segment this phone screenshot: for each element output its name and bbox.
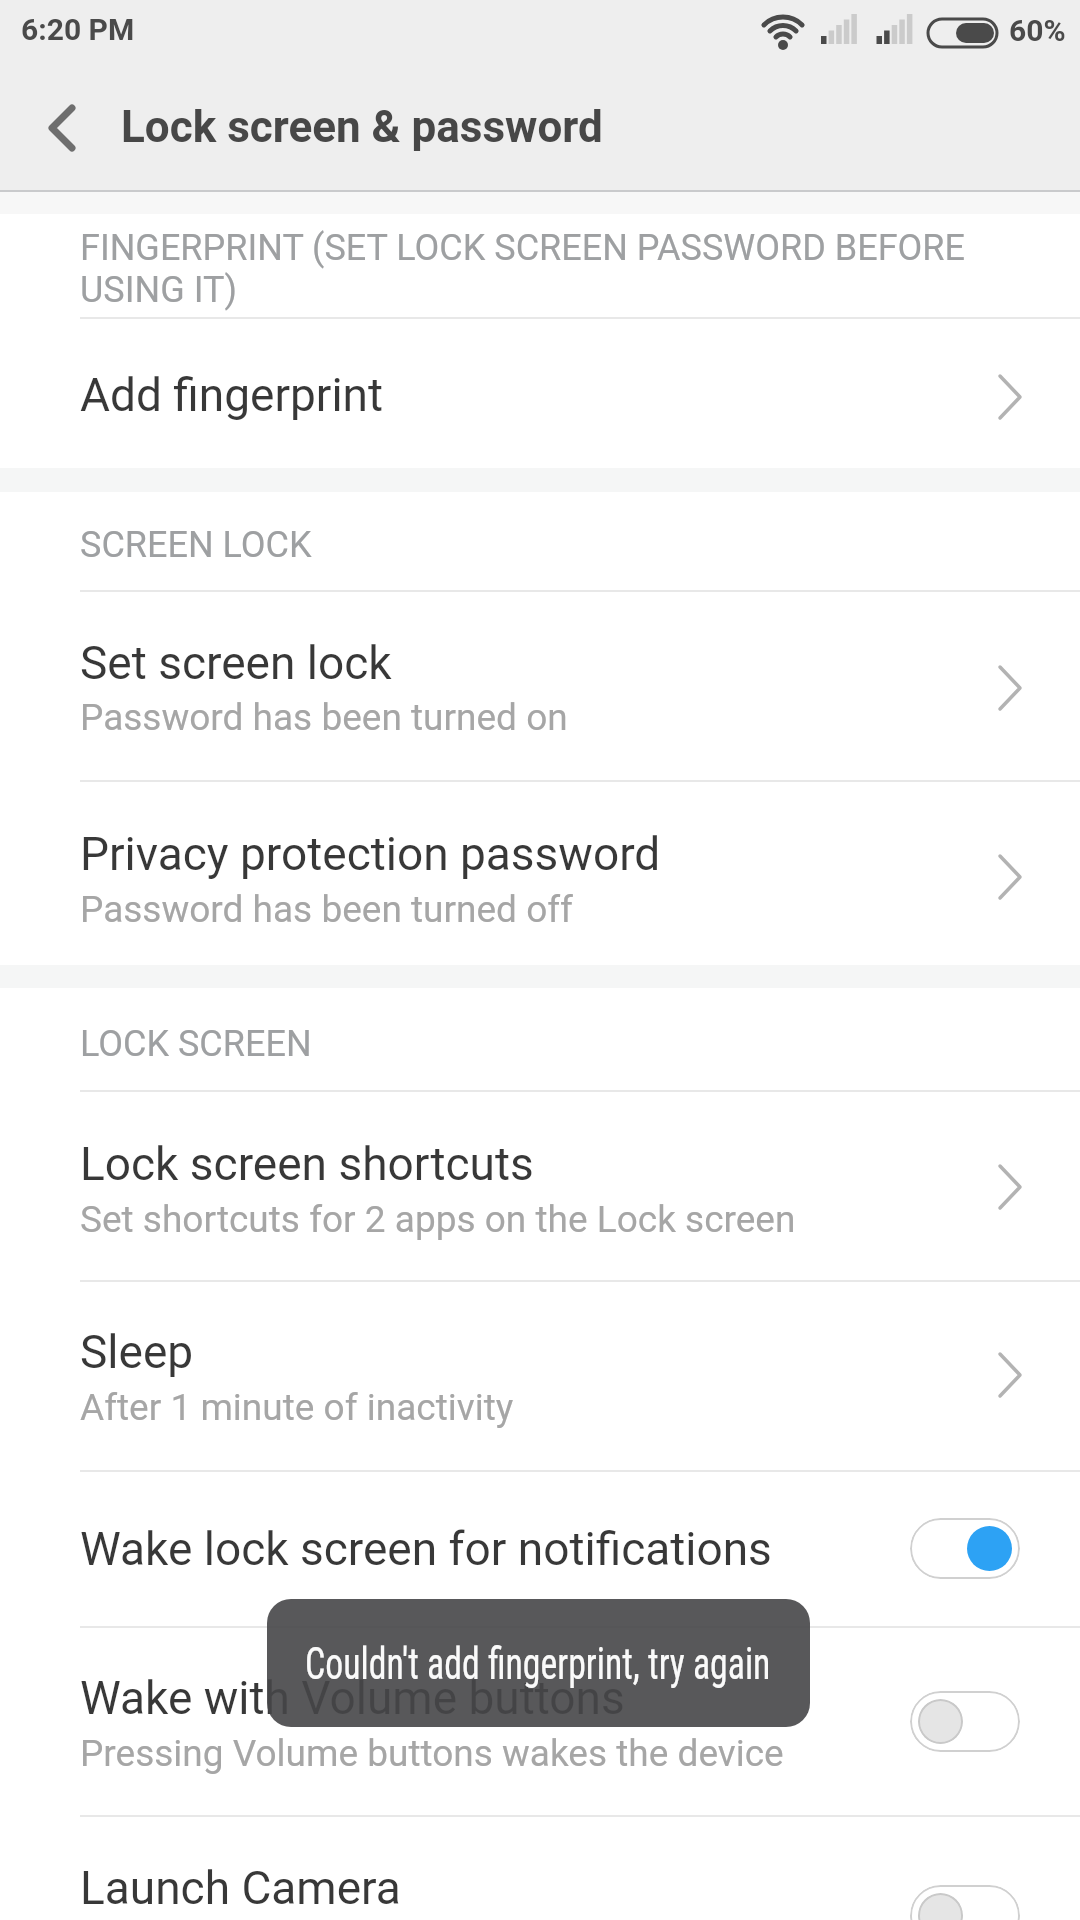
- staticText: Lock screen shortcuts: [80, 1137, 534, 1191]
- staticText: Set shortcuts for 2 apps on the Lock scr…: [80, 1198, 796, 1241]
- staticText: Password has been turned on: [80, 696, 568, 739]
- staticText: Launch Camera: [80, 1861, 401, 1915]
- staticText: Add fingerprint: [80, 368, 384, 422]
- staticText: Wake lock screen for notifications: [80, 1522, 772, 1576]
- staticText: Lock screen & password: [121, 101, 603, 153]
- staticText: 6:20 PM: [21, 12, 135, 47]
- staticText: Sleep: [80, 1325, 194, 1379]
- staticText: After 1 minute of inactivity: [80, 1386, 514, 1429]
- staticText: Set screen lock: [80, 636, 392, 690]
- staticText: SCREEN LOCK: [80, 524, 312, 566]
- staticText: Couldn't add fingerprint, try again: [305, 1637, 771, 1690]
- staticText: 60%: [1009, 13, 1066, 48]
- staticText: USING IT): [80, 269, 237, 311]
- staticText: Privacy protection password: [80, 827, 661, 881]
- staticText: FINGERPRINT (SET LOCK SCREEN PASSWORD BE…: [80, 227, 965, 269]
- staticText: Wake with Volume buttons: [80, 1671, 625, 1725]
- staticText: LOCK SCREEN: [80, 1023, 312, 1065]
- staticText: Pressing Volume buttons wakes the device: [80, 1732, 784, 1775]
- staticText: Password has been turned off: [80, 888, 573, 931]
